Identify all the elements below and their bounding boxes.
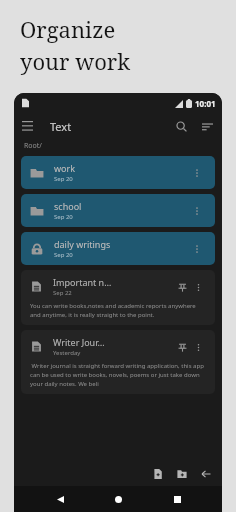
staticText: daily writings [54,238,111,250]
staticText: Important n… [53,276,112,288]
button[interactable]: More options [188,240,206,258]
button[interactable]: New folder [170,462,194,486]
staticText: your work [20,46,131,76]
staticText: Writer Jour… [53,336,105,348]
button[interactable]: More options [190,339,206,355]
staticText: Text [50,119,72,134]
staticText: Sep 22 [53,289,72,297]
button[interactable]: Menu [14,113,40,139]
button[interactable]: Back [47,486,73,512]
button[interactable]: Search [168,113,194,139]
staticText: Organize [20,14,116,44]
staticText: 10:01 [195,98,216,109]
button[interactable]: work [21,156,215,189]
button[interactable]: Back [194,462,218,486]
button[interactable]: Sort [194,113,220,139]
button[interactable]: More options [188,164,206,182]
button[interactable]: Home [105,486,131,512]
button[interactable]: More options [188,202,206,220]
staticText: work [54,162,76,174]
staticText: school [54,200,82,212]
staticText: Sep 20 [54,251,73,259]
button[interactable]: Pin [174,339,190,355]
button[interactable]: daily writings [21,232,215,265]
button[interactable]: Writer Jour… [21,330,215,394]
staticText: Sep 20 [54,213,73,221]
staticText: Writer journal is straight forward writi… [30,362,206,388]
staticText: Root/ [24,141,42,151]
button[interactable]: Pin [174,279,190,295]
button[interactable]: More options [190,279,206,295]
staticText: You can write books,notes and academic r… [30,302,206,319]
button[interactable]: school [21,194,215,227]
staticText: Yesterday [53,349,81,357]
staticText: Sep 20 [54,175,73,183]
button[interactable]: New note [146,462,170,486]
button[interactable]: Recents [164,486,190,512]
button[interactable]: Important n… [21,270,215,325]
